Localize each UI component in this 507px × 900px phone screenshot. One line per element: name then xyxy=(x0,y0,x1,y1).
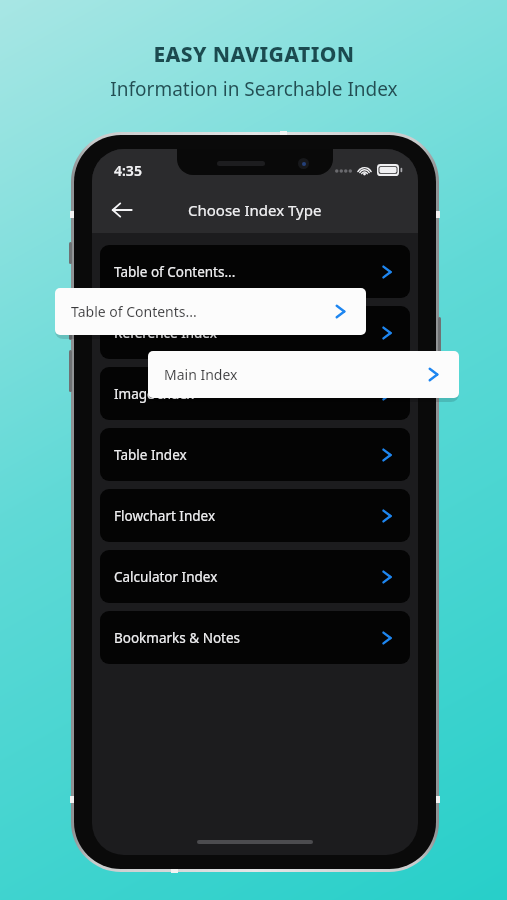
button[interactable]: Bookmarks & Notes xyxy=(100,611,410,664)
staticText: Information in Searchable Index xyxy=(110,76,398,102)
staticText: Choose Index Type xyxy=(188,200,322,220)
staticText: Table of Contents... xyxy=(114,263,378,281)
button[interactable]: Calculator Index xyxy=(100,550,410,603)
button[interactable]: Table of Contents... xyxy=(55,288,366,335)
staticText: Image Index xyxy=(114,385,378,403)
button[interactable]: Flowchart Index xyxy=(100,489,410,542)
staticText: Table of Contents... xyxy=(71,302,331,321)
staticText: Reference Index xyxy=(114,324,378,342)
button[interactable]: Back xyxy=(101,189,143,231)
staticText: Calculator Index xyxy=(114,568,378,586)
staticText: Main Index xyxy=(164,365,424,384)
staticText: Table Index xyxy=(114,446,378,464)
button[interactable]: Reference Index xyxy=(100,306,410,359)
staticText: 4:35 xyxy=(114,161,142,180)
button[interactable]: Image Index xyxy=(100,367,410,420)
button[interactable]: Table Index xyxy=(100,428,410,481)
staticText: Flowchart Index xyxy=(114,507,378,525)
button[interactable]: Main Index xyxy=(148,351,459,398)
button[interactable]: Table of Contents... xyxy=(100,245,410,298)
staticText: EASY NAVIGATION xyxy=(153,40,355,69)
staticText: Bookmarks & Notes xyxy=(114,629,378,647)
